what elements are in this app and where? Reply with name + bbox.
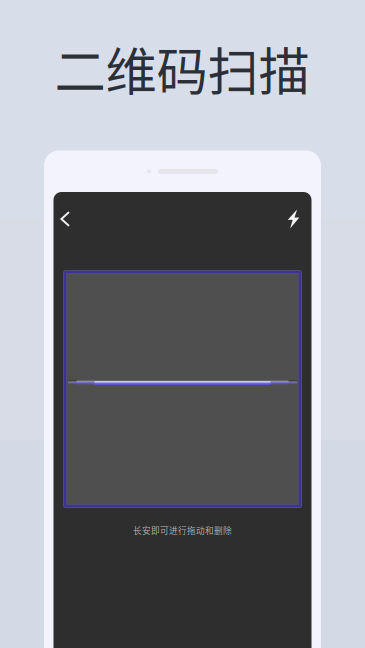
button[interactable]: Back [53,192,77,246]
staticText: 二维码扫描 [54,31,309,105]
staticText: 长安即可进行拖动和删除 [133,524,232,536]
button[interactable]: Flash [281,192,305,246]
